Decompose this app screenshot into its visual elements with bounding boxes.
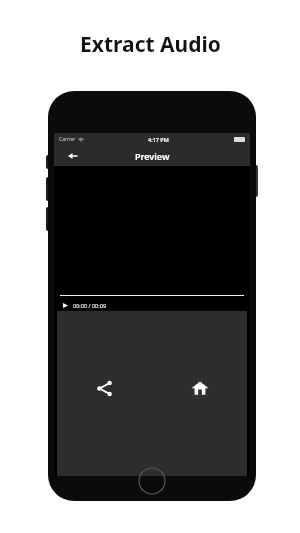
button[interactable]: Back <box>64 147 82 165</box>
button[interactable]: Home <box>152 371 247 405</box>
staticText: 4:17 PM <box>148 136 169 143</box>
staticText: 00:00 / 00:09 <box>73 302 107 309</box>
staticText: Carrier <box>59 136 76 143</box>
button[interactable]: Share <box>57 371 152 405</box>
staticText: Extract Audio <box>80 30 221 59</box>
staticText: Preview <box>135 150 170 162</box>
button[interactable]: Home button <box>138 467 166 495</box>
button[interactable]: Play <box>61 301 70 310</box>
